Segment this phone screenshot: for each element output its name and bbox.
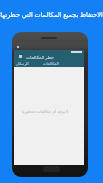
button[interactable]: المكالمات (43, 61, 59, 65)
staticText: لا يوجد أي مكالمات محظورة (12, 109, 80, 114)
staticText: الاحتفاظ بجميع المكالمات التي حظرتها (0, 10, 103, 19)
button[interactable]: الرسائل (16, 61, 29, 65)
staticText: حظر المكالمات (26, 54, 55, 60)
